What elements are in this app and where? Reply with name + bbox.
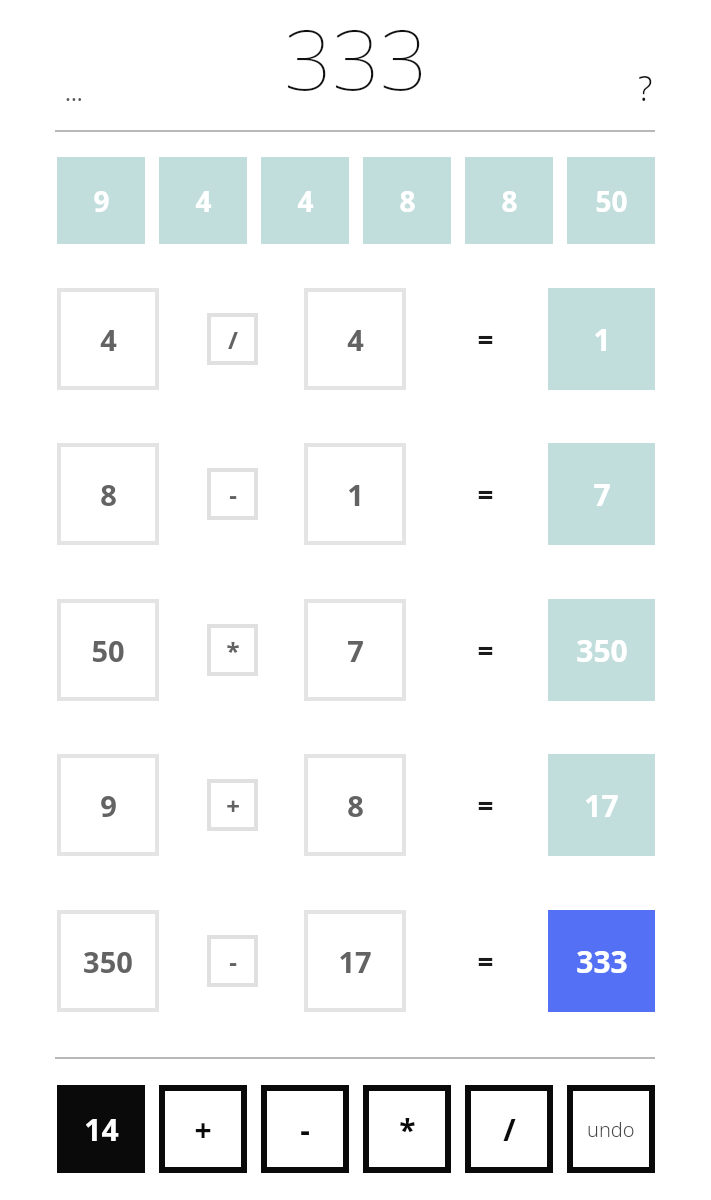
- button[interactable]: 17: [548, 754, 655, 856]
- button[interactable]: More options: [48, 70, 100, 114]
- staticText: 4: [297, 182, 314, 220]
- staticText: 50: [595, 182, 628, 220]
- staticText: ?: [638, 65, 653, 111]
- staticText: 14: [84, 1109, 119, 1150]
- button[interactable]: -: [207, 468, 258, 520]
- staticText: =: [477, 475, 494, 513]
- button[interactable]: 8: [304, 754, 406, 856]
- button[interactable]: 50: [567, 157, 655, 244]
- button[interactable]: 9: [57, 754, 159, 856]
- button[interactable]: 7: [304, 599, 406, 701]
- staticText: 8: [100, 475, 117, 514]
- staticText: =: [477, 942, 494, 980]
- staticText: 50: [91, 631, 125, 670]
- button[interactable]: 8: [363, 157, 451, 244]
- staticText: -: [229, 478, 237, 511]
- button[interactable]: 8: [465, 157, 553, 244]
- staticText: -: [229, 945, 237, 978]
- staticText: =: [477, 320, 494, 358]
- button[interactable]: 9: [57, 157, 145, 244]
- button[interactable]: 1: [548, 288, 655, 390]
- staticText: 4: [195, 182, 212, 220]
- button[interactable]: 14: [57, 1085, 145, 1173]
- staticText: 8: [399, 182, 416, 220]
- staticText: 8: [347, 786, 364, 825]
- staticText: /: [503, 1109, 516, 1150]
- staticText: 350: [83, 942, 133, 981]
- button[interactable]: 17: [304, 910, 406, 1012]
- staticText: 7: [593, 474, 611, 515]
- staticText: /: [228, 323, 238, 356]
- button[interactable]: *: [207, 624, 258, 676]
- button[interactable]: 4: [57, 288, 159, 390]
- button[interactable]: 8: [57, 443, 159, 545]
- button[interactable]: undo: [567, 1085, 655, 1173]
- staticText: 350: [576, 630, 628, 671]
- staticText: ...: [65, 77, 83, 107]
- staticText: -: [300, 1109, 310, 1150]
- staticText: 17: [338, 942, 372, 981]
- button[interactable]: /: [465, 1085, 553, 1173]
- staticText: +: [194, 1109, 212, 1150]
- button[interactable]: 4: [159, 157, 247, 244]
- button[interactable]: Help: [622, 62, 668, 114]
- button[interactable]: 333: [548, 910, 655, 1012]
- staticText: 4: [347, 320, 364, 359]
- button[interactable]: 50: [57, 599, 159, 701]
- button[interactable]: -: [207, 935, 258, 987]
- staticText: 1: [593, 319, 611, 360]
- button[interactable]: 7: [548, 443, 655, 545]
- button[interactable]: 4: [261, 157, 349, 244]
- button[interactable]: 350: [57, 910, 159, 1012]
- staticText: =: [477, 786, 494, 824]
- staticText: *: [399, 1109, 416, 1150]
- button[interactable]: +: [207, 779, 258, 831]
- staticText: 333: [284, 0, 428, 96]
- button[interactable]: +: [159, 1085, 247, 1173]
- button[interactable]: 1: [304, 443, 406, 545]
- staticText: 4: [100, 320, 117, 359]
- button[interactable]: 350: [548, 599, 655, 701]
- button[interactable]: 4: [304, 288, 406, 390]
- staticText: undo: [587, 1116, 635, 1143]
- staticText: 333: [576, 941, 628, 982]
- button[interactable]: *: [363, 1085, 451, 1173]
- staticText: 1: [347, 475, 364, 514]
- staticText: 9: [93, 182, 110, 220]
- staticText: +: [226, 789, 240, 822]
- staticText: =: [477, 631, 494, 669]
- staticText: 17: [584, 785, 619, 826]
- staticText: 8: [501, 182, 518, 220]
- button[interactable]: -: [261, 1085, 349, 1173]
- staticText: *: [226, 634, 240, 667]
- staticText: 9: [100, 786, 117, 825]
- staticText: 7: [347, 631, 364, 670]
- button[interactable]: /: [207, 313, 258, 365]
